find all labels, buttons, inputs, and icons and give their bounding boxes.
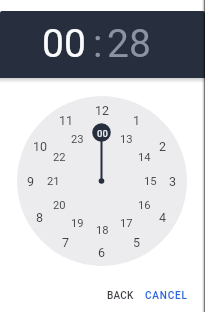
- staticText: 23: [71, 133, 84, 146]
- staticText: 6: [98, 245, 106, 260]
- button[interactable]: 1: [125, 112, 149, 128]
- staticText: 2: [159, 139, 167, 154]
- staticText: 3: [169, 174, 177, 189]
- button[interactable]: 21: [41, 173, 65, 189]
- staticText: 8: [36, 210, 44, 225]
- staticText: 9: [27, 174, 35, 189]
- staticText: CANCEL: [145, 290, 188, 302]
- button[interactable]: 5: [125, 234, 149, 250]
- button[interactable]: 22: [47, 149, 71, 165]
- staticText: 19: [71, 217, 84, 230]
- staticText: 21: [47, 175, 60, 188]
- button[interactable]: 3: [161, 173, 185, 189]
- button[interactable]: 14: [132, 149, 156, 165]
- button[interactable]: 4: [151, 209, 175, 225]
- button[interactable]: 18: [90, 222, 114, 238]
- staticText: 7: [62, 235, 70, 250]
- staticText: 17: [120, 217, 133, 230]
- staticText: 1: [133, 113, 141, 128]
- button[interactable]: 2: [151, 138, 175, 154]
- staticText: 28: [107, 21, 151, 67]
- button[interactable]: 19: [65, 215, 89, 231]
- staticText: 12: [95, 103, 110, 118]
- button[interactable]: 10: [28, 138, 52, 154]
- button[interactable]: 20: [47, 197, 71, 213]
- staticText: 18: [96, 224, 109, 237]
- button[interactable]: CANCEL: [142, 285, 191, 306]
- button[interactable]: 8: [28, 209, 52, 225]
- button[interactable]: 15: [138, 173, 162, 189]
- staticText: 14: [138, 151, 151, 164]
- staticText: 00: [42, 21, 86, 67]
- button[interactable]: 6: [90, 244, 114, 260]
- staticText: 13: [120, 133, 133, 146]
- button[interactable]: 23: [65, 131, 89, 147]
- staticText: BACK: [107, 290, 134, 302]
- staticText: 16: [138, 199, 151, 212]
- staticText: 11: [59, 113, 74, 128]
- staticText: 20: [53, 199, 66, 212]
- staticText: :: [93, 21, 103, 67]
- button[interactable]: 11: [54, 112, 78, 128]
- staticText: 4: [159, 210, 167, 225]
- staticText: 22: [53, 151, 66, 164]
- button[interactable]: 13: [114, 131, 138, 147]
- button[interactable]: 16: [132, 197, 156, 213]
- button[interactable]: 12: [90, 102, 114, 118]
- staticText: 00: [97, 128, 108, 139]
- button[interactable]: 7: [54, 234, 78, 250]
- button[interactable]: 17: [114, 215, 138, 231]
- button[interactable]: BACK: [105, 285, 136, 306]
- staticText: 15: [144, 175, 157, 188]
- staticText: 5: [133, 235, 141, 250]
- staticText: 10: [33, 139, 48, 154]
- button[interactable]: 9: [19, 173, 43, 189]
